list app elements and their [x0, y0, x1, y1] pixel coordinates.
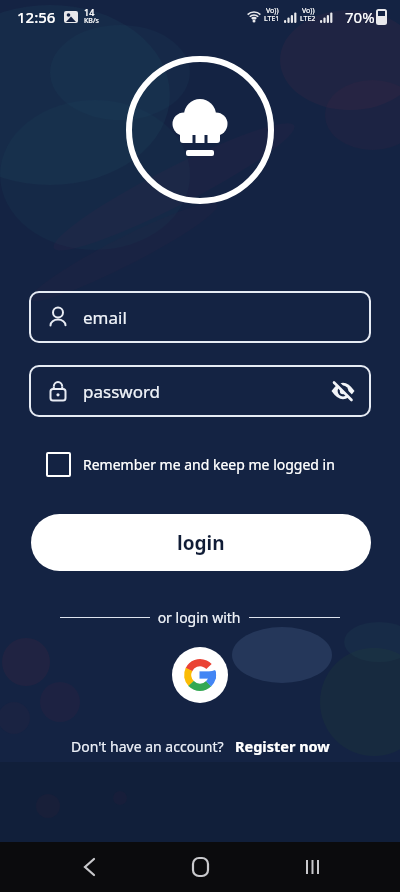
button[interactable]: Remember me and keep me logged in	[46, 452, 335, 477]
button[interactable]	[134, 842, 267, 892]
button[interactable]	[267, 842, 400, 892]
staticText: Vo))	[266, 6, 279, 16]
staticText: Vo))	[302, 6, 315, 16]
staticText: login	[177, 530, 225, 556]
staticText: or login with	[154, 608, 245, 627]
staticText: 14	[84, 6, 95, 18]
staticText: KB/s	[84, 16, 99, 26]
staticText: LTE1	[264, 14, 280, 24]
staticText: 12:56	[17, 7, 56, 27]
button[interactable]	[323, 371, 363, 411]
button[interactable]: Register now	[235, 736, 330, 756]
staticText: 70%	[345, 7, 375, 27]
button[interactable]	[0, 842, 134, 892]
staticText: Remember me and keep me logged in	[83, 455, 335, 474]
button[interactable]: login	[31, 514, 371, 571]
staticText: email	[83, 306, 127, 329]
button[interactable]: password	[29, 365, 371, 417]
button[interactable]	[172, 647, 228, 703]
staticText: LTE2	[300, 14, 316, 24]
button[interactable]: email	[29, 291, 371, 343]
staticText: password	[83, 380, 161, 403]
staticText: Don't have an account?	[71, 737, 224, 756]
